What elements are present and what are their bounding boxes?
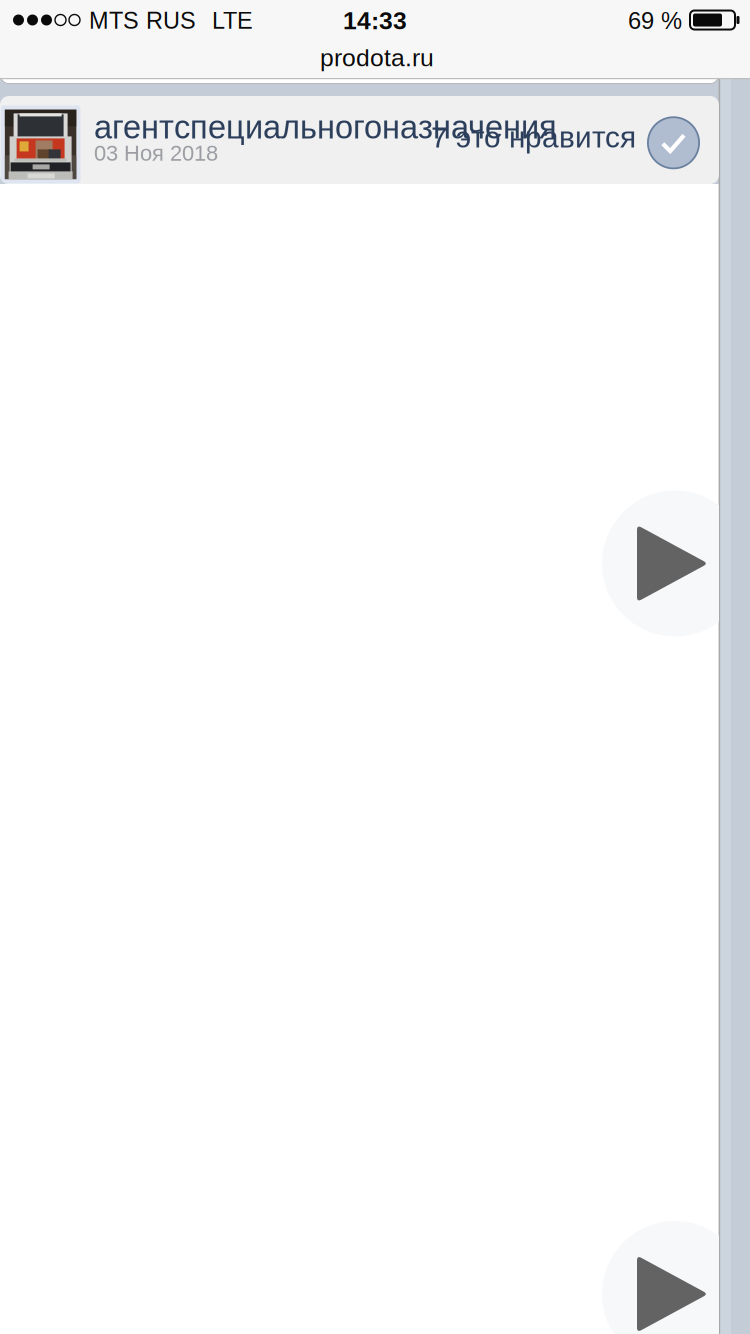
button[interactable]: агентспециальногоназначения — [0, 96, 719, 184]
staticText: 03 Ноя 2018 — [94, 141, 218, 165]
staticText: 7 это нравится — [431, 120, 636, 154]
staticText: агентспециальногоназначения — [94, 109, 557, 145]
button[interactable]: Play video — [602, 490, 748, 636]
staticText: LTE — [212, 7, 253, 34]
staticText: 69 % — [628, 7, 682, 34]
button[interactable]: Play video — [602, 1221, 748, 1334]
button[interactable]: prodota.ru — [0, 44, 750, 78]
staticText: MTS RUS — [89, 7, 196, 34]
staticText: prodota.ru — [320, 44, 434, 72]
staticText: 14:33 — [343, 7, 407, 35]
